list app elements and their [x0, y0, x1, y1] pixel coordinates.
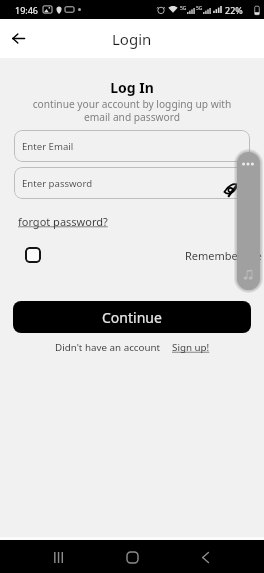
staticText: Sign up! — [172, 341, 210, 354]
button[interactable]: Enter password — [14, 167, 250, 199]
staticText: Login — [112, 29, 152, 49]
staticText: Log In — [0, 78, 264, 97]
button[interactable]: Recent apps — [46, 545, 70, 569]
staticText: 5G — [180, 5, 187, 12]
button[interactable]: Edge panel — [237, 152, 260, 290]
button[interactable]: forgot password? — [18, 214, 108, 229]
staticText: forgot password? — [18, 214, 108, 229]
staticText: Continue — [102, 308, 162, 327]
button[interactable]: Show password — [221, 179, 241, 199]
button[interactable]: Remember me — [185, 248, 262, 263]
staticText: Enter password — [22, 177, 93, 190]
button[interactable]: Back — [193, 545, 217, 569]
button[interactable]: Sign up! — [172, 341, 210, 354]
staticText: Enter Email — [22, 140, 74, 153]
staticText: Didn't have an account — [55, 341, 161, 354]
staticText: continue your account by logging up with… — [0, 97, 264, 124]
button[interactable]: Enter Email — [14, 130, 250, 162]
button[interactable]: Remember me — [25, 247, 41, 263]
staticText: 22% — [225, 4, 243, 16]
button[interactable]: Home — [120, 545, 144, 569]
staticText: Remember me — [185, 248, 262, 263]
staticText: 19:46 — [15, 4, 39, 16]
staticText: 5G — [196, 5, 203, 12]
button[interactable]: Continue — [13, 301, 251, 333]
button[interactable]: Back — [7, 27, 30, 50]
